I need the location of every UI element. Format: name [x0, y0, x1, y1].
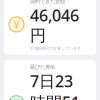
- staticText: ※1箱600円で計算しています。: [30, 45, 85, 51]
- button[interactable]: ♥: [4, 60, 96, 100]
- staticText: 46,046円: [30, 5, 79, 45]
- staticText: ♥: [11, 97, 21, 100]
- staticText: ¥: [13, 17, 19, 32]
- staticText: 延びた寿命: [30, 64, 55, 70]
- button[interactable]: ¥: [4, 0, 96, 55]
- staticText: 7日23時間51分: [30, 70, 80, 100]
- staticText: 節約できた金額: [30, 0, 65, 5]
